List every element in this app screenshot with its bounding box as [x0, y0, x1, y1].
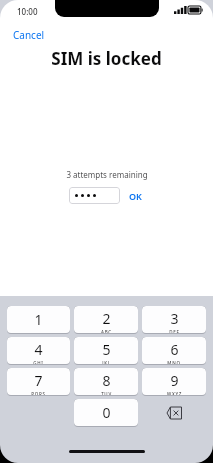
- button[interactable]: 2: [74, 306, 138, 333]
- staticText: 1: [34, 310, 43, 329]
- staticText: 7: [34, 371, 43, 390]
- staticText: Cancel: [13, 28, 45, 42]
- staticText: 3 attempts remaining: [66, 169, 148, 180]
- staticText: JKL: [102, 360, 111, 364]
- staticText: 10:00: [17, 6, 38, 17]
- staticText: GHI: [33, 360, 44, 364]
- staticText: 9: [170, 371, 179, 390]
- staticText: SIM is locked: [51, 47, 162, 70]
- staticText: TUV: [101, 391, 112, 395]
- button[interactable]: OK: [126, 188, 145, 204]
- button[interactable]: Cancel: [10, 26, 48, 44]
- button[interactable]: 4: [7, 337, 70, 364]
- staticText: 5: [102, 340, 111, 359]
- staticText: DEF: [169, 329, 180, 333]
- button[interactable]: [69, 187, 120, 204]
- staticText: 3: [170, 309, 179, 328]
- staticText: 6: [170, 340, 179, 359]
- button[interactable]: 5: [74, 337, 138, 364]
- staticText: PQRS: [31, 391, 46, 395]
- button[interactable]: 3: [142, 306, 206, 333]
- staticText: ABC: [101, 329, 112, 333]
- staticText: 8: [102, 371, 111, 390]
- button[interactable]: 8: [74, 368, 138, 395]
- button[interactable]: 6: [142, 337, 206, 364]
- staticText: 0: [102, 403, 111, 422]
- button[interactable]: Delete: [142, 399, 206, 427]
- button[interactable]: 1: [7, 306, 70, 333]
- staticText: WXYZ: [167, 391, 182, 395]
- staticText: 4: [34, 340, 43, 359]
- button[interactable]: 9: [142, 368, 206, 395]
- button[interactable]: 0: [74, 399, 138, 426]
- staticText: MNO: [167, 360, 181, 364]
- staticText: 2: [102, 309, 111, 328]
- button[interactable]: 7: [7, 368, 70, 395]
- staticText: OK: [129, 190, 142, 202]
